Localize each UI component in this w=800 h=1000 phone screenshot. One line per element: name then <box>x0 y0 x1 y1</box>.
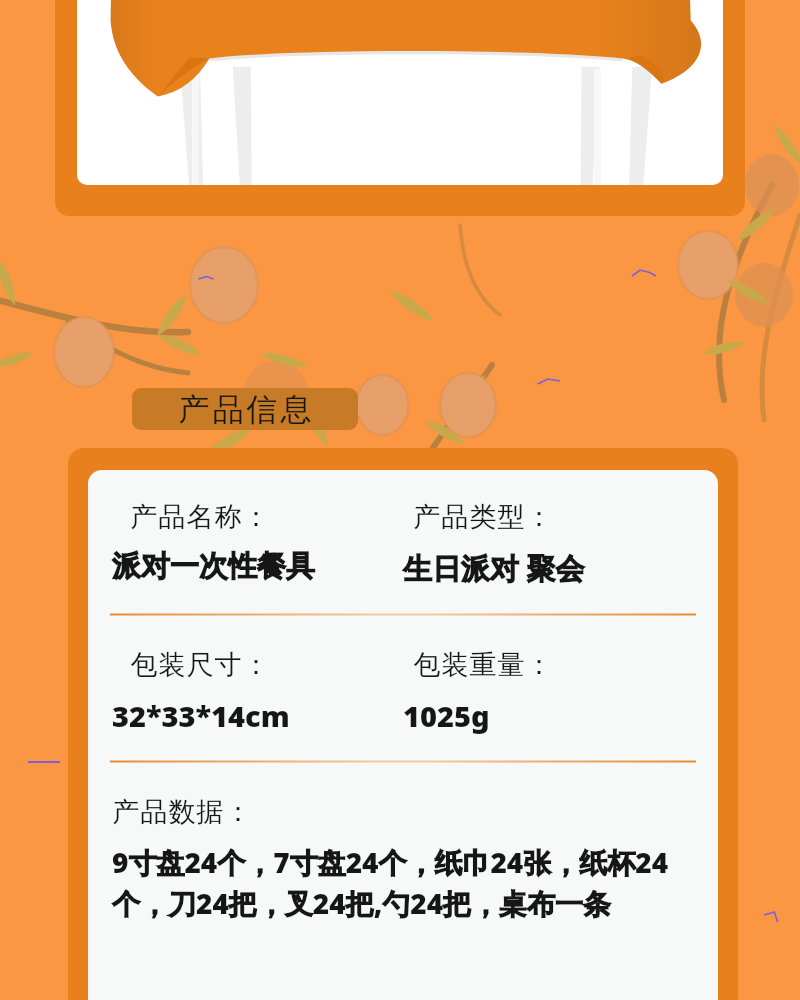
staticText: 包装重量： <box>413 648 553 682</box>
staticText: 生日派对 聚会 <box>403 548 585 588</box>
staticText: 产品数据： <box>112 795 252 829</box>
staticText: 包装尺寸： <box>130 648 270 682</box>
staticText: 派对一次性餐具 <box>112 548 315 585</box>
staticText: 产品类型： <box>413 500 553 534</box>
button[interactable] <box>55 0 745 216</box>
staticText: 9寸盘24个，7寸盘24个，纸巾24张，纸杯24个，刀24把，叉24把,勺24把… <box>112 843 710 923</box>
button[interactable]: 产品信息 <box>132 388 358 430</box>
button[interactable]: 产品名称： <box>88 470 718 1000</box>
staticText: 1025g <box>403 696 490 735</box>
staticText: 32*33*14cm <box>112 696 290 735</box>
staticText: 产品信息 <box>177 390 313 429</box>
staticText: 产品名称： <box>130 500 270 534</box>
